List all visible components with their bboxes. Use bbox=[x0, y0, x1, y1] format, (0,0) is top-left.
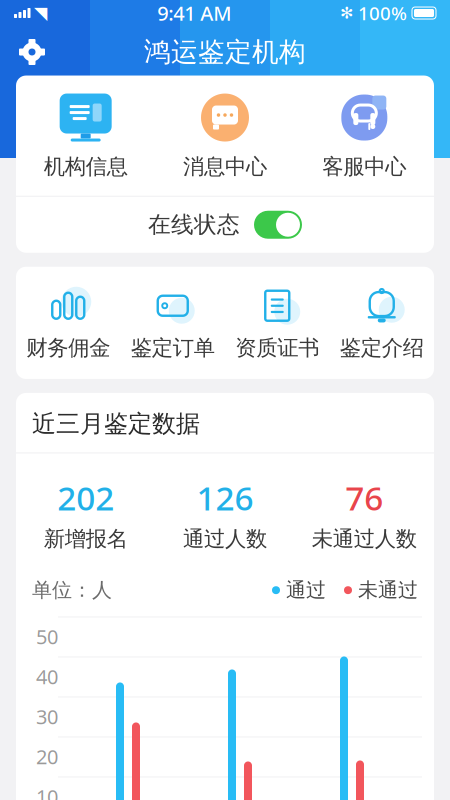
staticText: 202 bbox=[57, 475, 114, 520]
button[interactable]: 鉴定订单 bbox=[120, 267, 225, 379]
staticText: 鉴定介绍 bbox=[340, 335, 424, 361]
staticText: 20 bbox=[36, 743, 58, 770]
staticText: 资质证书 bbox=[235, 335, 319, 361]
staticText: 在线状态 bbox=[148, 211, 240, 239]
staticText: 30 bbox=[36, 703, 58, 730]
staticText: 消息中心 bbox=[183, 153, 267, 180]
staticText: 鉴定订单 bbox=[131, 335, 215, 361]
staticText: 10 bbox=[36, 783, 58, 800]
staticText: 新增报名 bbox=[44, 526, 128, 552]
staticText: 客服中心 bbox=[322, 153, 406, 180]
staticText: 100% bbox=[358, 1, 407, 25]
staticText: 近三月鉴定数据 bbox=[32, 409, 200, 438]
staticText: 50 bbox=[36, 623, 58, 650]
staticText: ◥ bbox=[34, 3, 47, 23]
button[interactable]: 机构信息 bbox=[16, 75, 155, 196]
staticText: 9:41 AM bbox=[157, 0, 231, 26]
button[interactable]: 资质证书 bbox=[225, 267, 329, 379]
staticText: 单位：人 bbox=[32, 578, 112, 602]
button[interactable]: 设置 bbox=[10, 30, 54, 74]
button[interactable]: 鉴定介绍 bbox=[329, 267, 434, 379]
staticText: 未通过 bbox=[358, 578, 418, 602]
staticText: 通过人数 bbox=[183, 526, 267, 552]
button[interactable]: 消息中心 bbox=[155, 75, 295, 196]
staticText: 机构信息 bbox=[44, 153, 128, 180]
staticText: 通过 bbox=[286, 578, 326, 602]
button[interactable]: 客服中心 bbox=[295, 75, 434, 196]
staticText: ✻ bbox=[340, 4, 353, 22]
staticText: 财务佣金 bbox=[26, 335, 110, 361]
staticText: 未通过人数 bbox=[312, 526, 417, 552]
button[interactable]: 在线状态 bbox=[16, 197, 434, 253]
staticText: 鸿运鉴定机构 bbox=[144, 36, 306, 68]
staticText: 126 bbox=[196, 475, 253, 520]
staticText: 76 bbox=[345, 475, 383, 520]
button[interactable]: 财务佣金 bbox=[16, 267, 120, 379]
staticText: 40 bbox=[36, 663, 58, 690]
